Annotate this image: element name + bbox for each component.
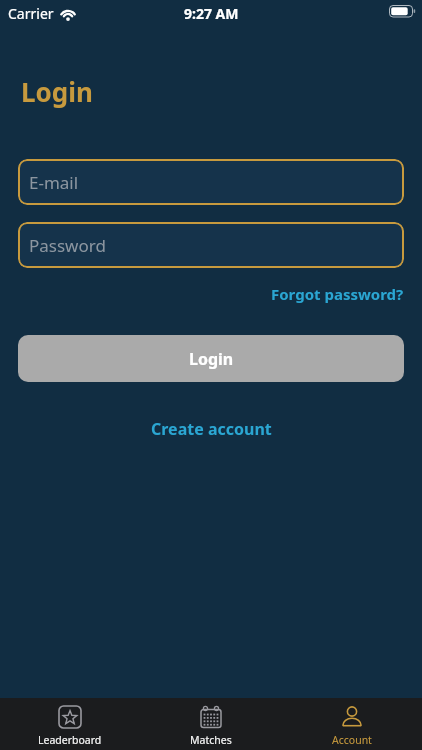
button[interactable]: Forgot password? xyxy=(271,284,404,304)
staticText: Leaderboard xyxy=(38,733,102,747)
staticText: Password xyxy=(29,234,106,257)
button[interactable]: Leaderboard xyxy=(0,698,140,750)
button[interactable]: Account xyxy=(281,698,422,750)
button[interactable]: Create account xyxy=(151,418,272,440)
staticText: E-mail xyxy=(29,171,79,194)
staticText: Carrier xyxy=(8,4,54,23)
staticText: Account xyxy=(332,733,372,747)
staticText: Login xyxy=(189,348,234,370)
staticText: Login xyxy=(21,74,93,109)
staticText: Matches xyxy=(190,733,232,747)
staticText: 9:27 AM xyxy=(184,4,239,23)
button[interactable]: Matches xyxy=(140,698,281,750)
button[interactable]: E-mail xyxy=(18,159,404,205)
button[interactable]: Login xyxy=(18,335,404,382)
button[interactable]: Password xyxy=(18,222,404,268)
